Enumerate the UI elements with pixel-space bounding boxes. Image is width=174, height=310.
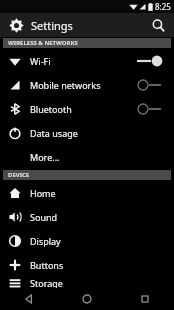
button[interactable]: Home [58, 288, 116, 310]
button[interactable]: Bluetooth [0, 97, 174, 121]
staticText: Data usage [30, 127, 78, 139]
staticText: Buttons [30, 259, 64, 271]
staticText: 8:25 [155, 1, 171, 12]
button[interactable]: Buttons [0, 253, 174, 277]
button[interactable]: Sound [0, 205, 174, 229]
button[interactable]: Mobile networks switch [129, 73, 171, 97]
button[interactable]: Mobile networks [0, 73, 174, 97]
staticText: Display [30, 235, 61, 247]
button[interactable]: Search [145, 13, 171, 37]
button[interactable]: Recents [116, 288, 174, 310]
staticText: Wi-Fi [30, 55, 51, 67]
button[interactable]: Wi-Fi [0, 49, 174, 73]
staticText: Mobile networks [30, 79, 101, 91]
button[interactable]: Wi-Fi switch [129, 49, 171, 73]
staticText: Bluetooth [30, 103, 72, 115]
button[interactable]: Display [0, 229, 174, 253]
staticText: Home [30, 187, 56, 199]
button[interactable]: Bluetooth switch [129, 97, 171, 121]
staticText: Sound [30, 211, 58, 223]
button[interactable]: Back [0, 288, 58, 310]
button[interactable]: Data usage [0, 121, 174, 145]
staticText: DEVICE [8, 171, 30, 179]
staticText: Storage [30, 277, 63, 288]
staticText: WIRELESS & NETWORKS [8, 39, 78, 47]
staticText: Settings [31, 18, 73, 33]
staticText: More... [30, 151, 60, 163]
button[interactable]: Storage [0, 277, 174, 288]
button[interactable]: Home [0, 181, 174, 205]
button[interactable]: More... [0, 145, 174, 169]
